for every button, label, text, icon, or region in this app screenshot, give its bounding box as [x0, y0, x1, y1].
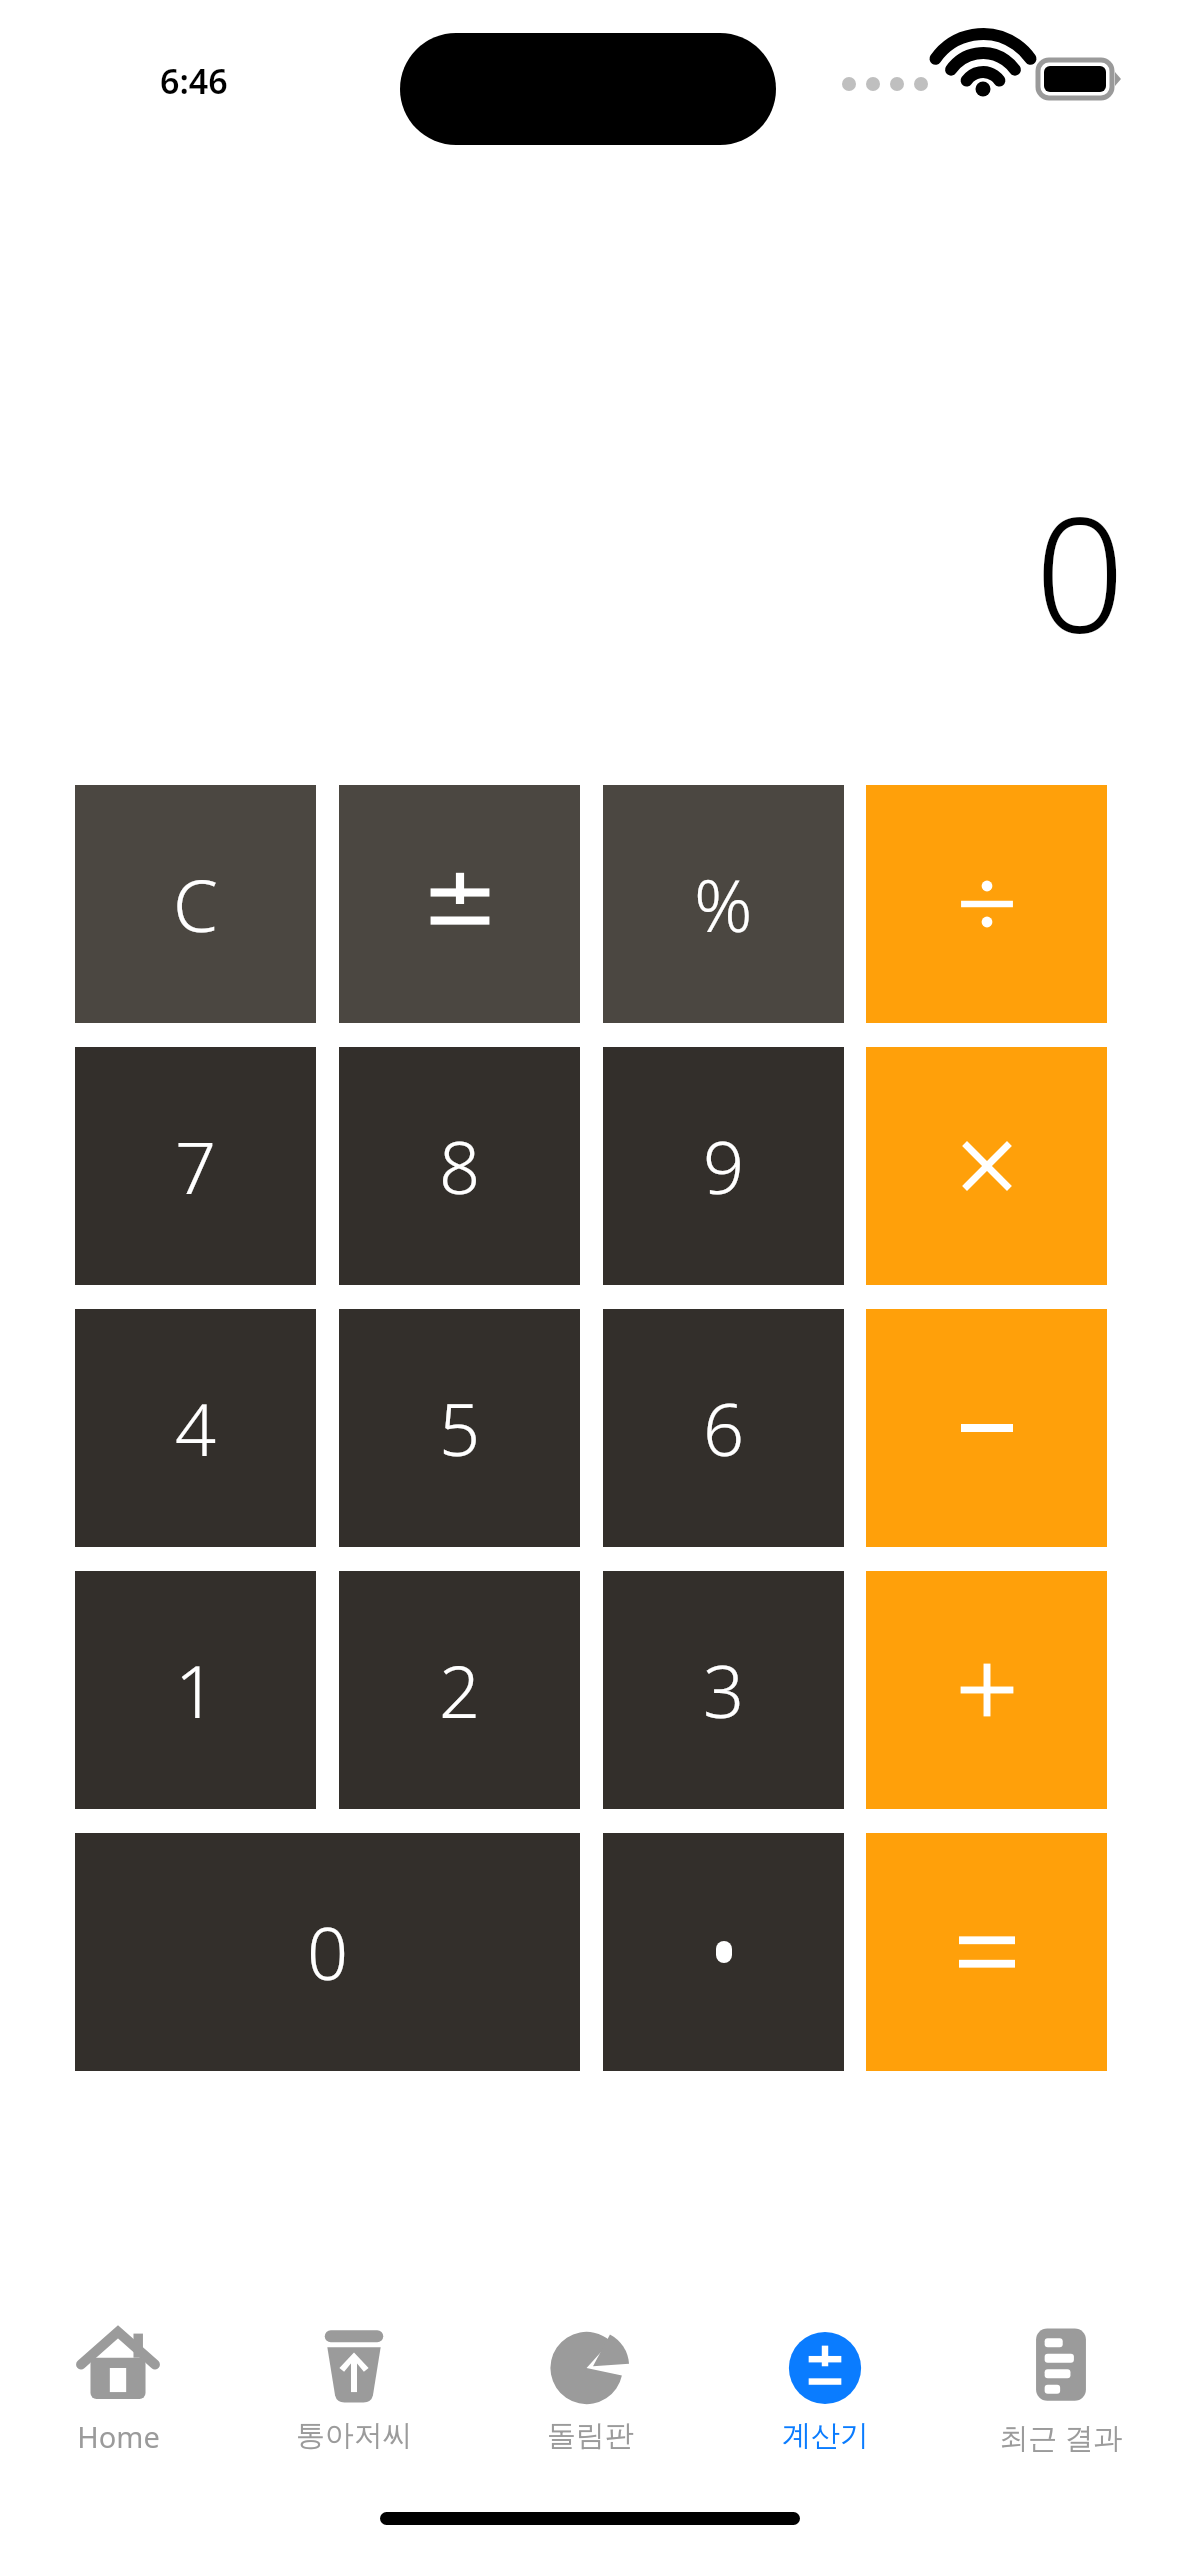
staticText: 6:46	[160, 58, 228, 104]
staticText: C	[173, 855, 218, 953]
button[interactable]: 7	[75, 1047, 316, 1285]
staticText: 4	[175, 1379, 217, 1477]
button[interactable]: 4	[75, 1309, 316, 1547]
button[interactable]: Multiply	[866, 1047, 1107, 1285]
staticText: 최근 결과	[999, 2417, 1123, 2457]
button[interactable]: Minus	[866, 1309, 1107, 1547]
button[interactable]: Plus	[866, 1571, 1107, 1809]
staticText: 3	[703, 1641, 745, 1739]
button[interactable]: Divide	[866, 785, 1107, 1023]
staticText: 돌림판	[547, 2417, 634, 2454]
button[interactable]: Home	[0, 2325, 236, 2475]
button[interactable]: 0	[75, 1833, 580, 2071]
other: 계산기	[782, 2325, 868, 2411]
button[interactable]: 계산기	[707, 2325, 943, 2475]
staticText: 1	[175, 1641, 217, 1739]
button[interactable]: 9	[603, 1047, 844, 1285]
staticText: 9	[703, 1117, 745, 1215]
staticText: 7	[175, 1117, 217, 1215]
button[interactable]: Plus minus	[339, 785, 580, 1023]
button[interactable]: 통아저씨	[236, 2325, 472, 2475]
button[interactable]: 8	[339, 1047, 580, 1285]
button[interactable]: Equals	[866, 1833, 1107, 2071]
staticText: 0	[307, 1903, 349, 2001]
staticText: Home	[77, 2417, 160, 2456]
other: 최근 결과	[1018, 2325, 1104, 2411]
button[interactable]: %	[603, 785, 844, 1023]
button[interactable]: 돌림판	[472, 2325, 708, 2475]
button[interactable]: 6	[603, 1309, 844, 1547]
staticText: 0	[1034, 463, 1125, 678]
button[interactable]: 5	[339, 1309, 580, 1547]
other: Home	[75, 2325, 161, 2411]
button[interactable]: 1	[75, 1571, 316, 1809]
button[interactable]: 최근 결과	[943, 2325, 1179, 2475]
button[interactable]: 2	[339, 1571, 580, 1809]
staticText: 2	[439, 1641, 481, 1739]
other: 통아저씨	[311, 2325, 397, 2411]
button[interactable]: Decimal point	[603, 1833, 844, 2071]
staticText: 5	[439, 1379, 481, 1477]
staticText: %	[694, 855, 753, 953]
other: 돌림판	[547, 2325, 633, 2411]
staticText: 계산기	[782, 2417, 869, 2454]
button[interactable]: C	[75, 785, 316, 1023]
staticText: 6	[703, 1379, 745, 1477]
staticText: 통아저씨	[296, 2417, 412, 2454]
button[interactable]: 3	[603, 1571, 844, 1809]
staticText: 8	[439, 1117, 481, 1215]
